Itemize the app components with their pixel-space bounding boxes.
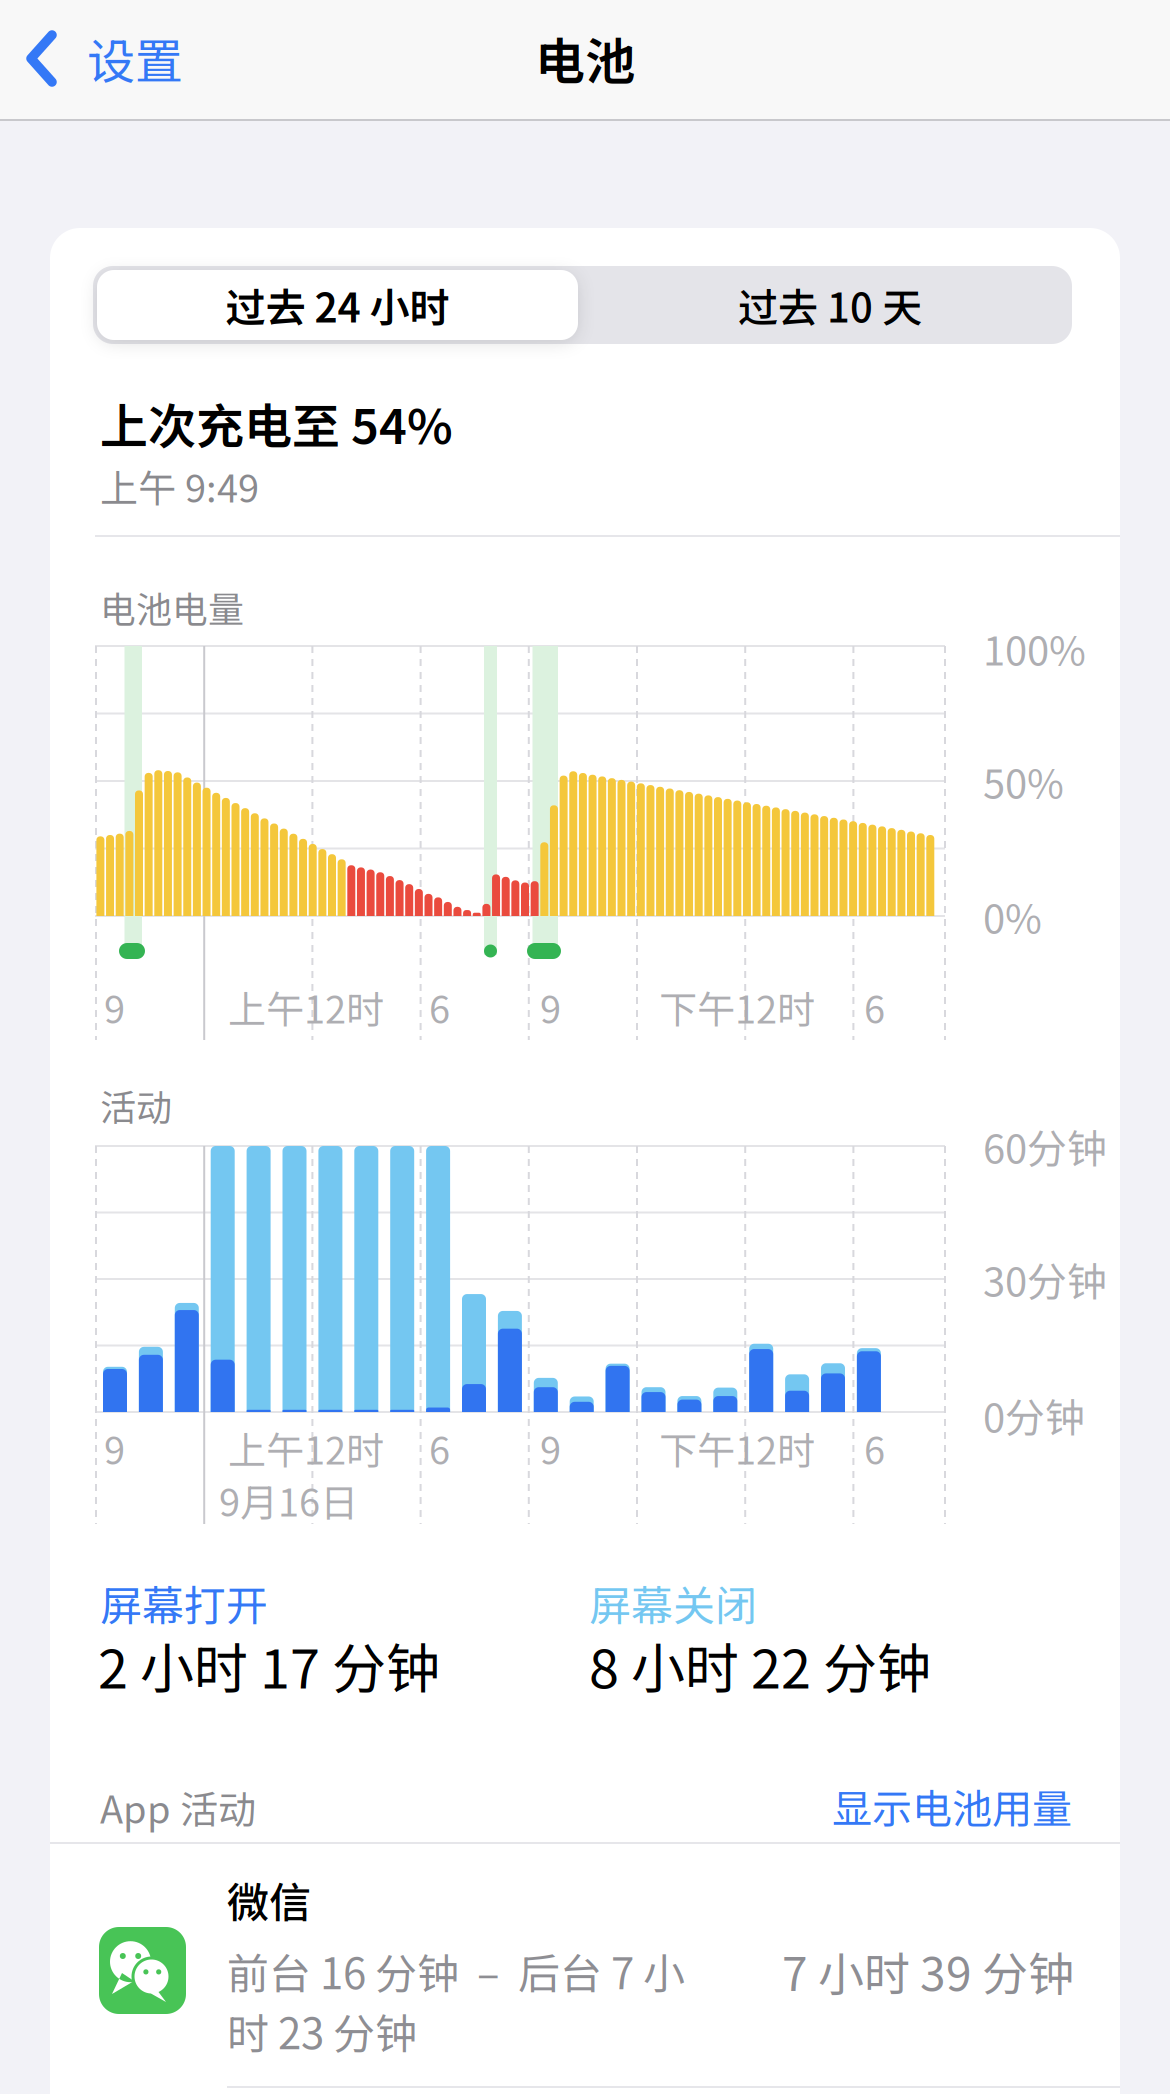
- button[interactable]: 设置: [14, 11, 264, 105]
- staticText: 设置: [87, 23, 183, 93]
- staticText: 上午12时: [228, 1420, 384, 1475]
- staticText: App 活动: [100, 1779, 256, 1834]
- button[interactable]: 过去 10 天: [588, 266, 1071, 344]
- staticText: 6: [864, 979, 885, 1034]
- staticText: 7 小时 39 分钟: [782, 1938, 1074, 2004]
- staticText: 屏幕关闭: [589, 1573, 757, 1633]
- staticText: 活动: [100, 1079, 172, 1131]
- staticText: 0分钟: [983, 1386, 1085, 1444]
- staticText: 0%: [983, 887, 1042, 945]
- staticText: 显示电池用量: [832, 1777, 1072, 1835]
- staticText: 下午12时: [659, 1420, 815, 1475]
- staticText: 6: [429, 979, 450, 1034]
- button[interactable]: 微信: [50, 1844, 1120, 2094]
- staticText: 前台 16 分钟 – 后台 7 小: [227, 1941, 685, 2001]
- staticText: 9: [104, 979, 125, 1034]
- staticText: 过去 24 小时: [225, 276, 449, 334]
- staticText: 过去 10 天: [738, 276, 922, 334]
- staticText: 上午12时: [228, 979, 384, 1034]
- staticText: 100%: [983, 619, 1086, 677]
- button[interactable]: 显示电池用量: [752, 1774, 1072, 1838]
- staticText: 2 小时 17 分钟: [98, 1626, 440, 1704]
- staticText: 6: [864, 1420, 885, 1475]
- staticText: 时 23 分钟: [227, 2001, 417, 2061]
- staticText: 8 小时 22 分钟: [589, 1626, 931, 1704]
- staticText: 电池电量: [100, 581, 244, 633]
- button[interactable]: 过去 24 小时: [93, 266, 582, 344]
- staticText: 60分钟: [983, 1117, 1107, 1175]
- staticText: 9: [540, 1420, 561, 1475]
- staticText: 上次充电至 54%: [100, 388, 453, 458]
- staticText: 9月16日: [219, 1472, 358, 1527]
- staticText: 9: [104, 1420, 125, 1475]
- staticText: 屏幕打开: [100, 1573, 268, 1633]
- staticText: 9: [540, 979, 561, 1034]
- staticText: 上午 9:49: [100, 458, 259, 513]
- staticText: 电池: [535, 22, 635, 94]
- staticText: 下午12时: [659, 979, 815, 1034]
- staticText: 6: [429, 1420, 450, 1475]
- staticText: 30分钟: [983, 1250, 1107, 1308]
- staticText: 50%: [983, 752, 1064, 810]
- staticText: 微信: [227, 1870, 311, 1930]
